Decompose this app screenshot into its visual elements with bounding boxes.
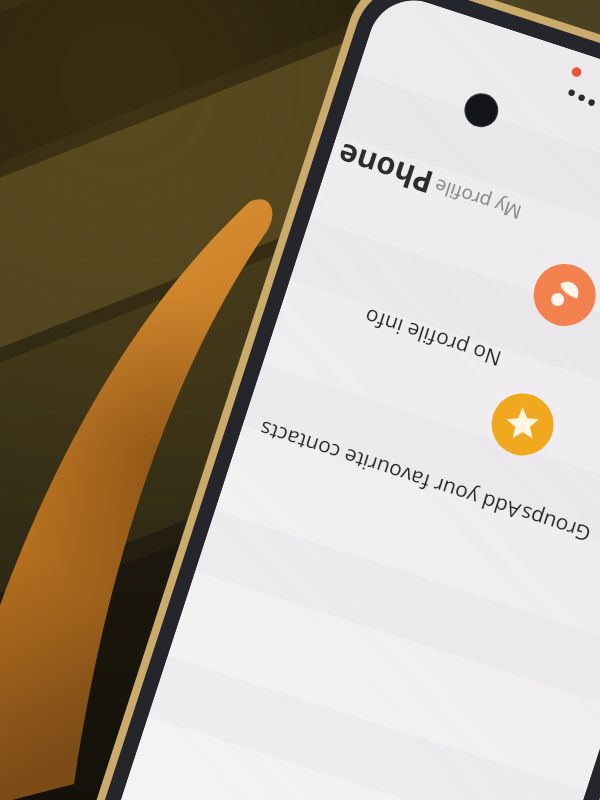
other: Photo of a phone showing the Contacts ap… <box>0 0 600 800</box>
